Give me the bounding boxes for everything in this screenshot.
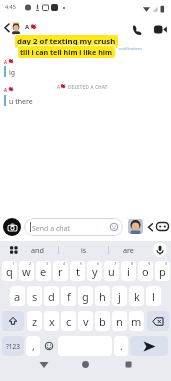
button[interactable]: u (104, 261, 119, 281)
staticText: z (32, 314, 38, 329)
staticText: . (120, 339, 123, 353)
staticText: is (81, 245, 87, 255)
button[interactable]: v (78, 311, 93, 331)
button[interactable] (6, 244, 22, 256)
button[interactable]: x (44, 311, 59, 331)
staticText: s (32, 289, 38, 304)
button[interactable]: is (76, 243, 92, 257)
staticText: k (134, 289, 140, 304)
staticText: , (32, 339, 35, 353)
staticText: o (142, 264, 149, 279)
button[interactable]: h (95, 286, 110, 306)
button[interactable] (2, 22, 12, 34)
button[interactable]: n (112, 311, 127, 331)
button[interactable]: z (27, 311, 42, 331)
button[interactable]: and (22, 243, 52, 257)
staticText: 4:45 (5, 3, 16, 10)
staticText: 2 (29, 261, 32, 266)
staticText: DELETED A CHAT (68, 84, 108, 90)
staticText: g (82, 289, 89, 304)
button[interactable]: b (95, 311, 110, 331)
button[interactable]: y (87, 261, 102, 281)
button[interactable]: g (78, 286, 93, 306)
button[interactable]: , (26, 336, 40, 356)
staticText: i (127, 264, 130, 279)
button[interactable]: w (19, 261, 34, 281)
staticText: p (159, 264, 166, 279)
staticText: and (31, 245, 44, 255)
button[interactable]: j (112, 286, 127, 306)
staticText: day 2 of texting my crush (17, 36, 116, 47)
staticText: c (66, 314, 72, 329)
staticText: 0 (165, 261, 168, 266)
staticText: u there (9, 97, 33, 107)
staticText: A (57, 84, 60, 90)
button[interactable]: e (36, 261, 51, 281)
staticText: notifications (119, 46, 143, 51)
staticText: 9 (148, 261, 151, 266)
button[interactable]: m (129, 311, 144, 331)
button[interactable]: Send a chat (24, 218, 123, 236)
button[interactable] (122, 358, 135, 371)
button[interactable] (2, 311, 24, 331)
button[interactable] (3, 218, 21, 236)
staticText: till i can tell him i like him (20, 47, 113, 57)
staticText: t (76, 264, 80, 279)
staticText: 1 (12, 261, 15, 266)
staticText: w (22, 264, 31, 279)
button[interactable] (153, 243, 167, 257)
button[interactable]: i (121, 261, 136, 281)
button[interactable]: are (118, 243, 138, 257)
button[interactable]: o (138, 261, 153, 281)
button[interactable] (36, 360, 52, 370)
staticText: 4 (63, 261, 66, 266)
staticText: n (116, 314, 123, 329)
staticText: A (4, 87, 8, 93)
button[interactable] (154, 25, 168, 34)
staticText: 3 (46, 261, 49, 266)
staticText: 8 (131, 261, 134, 266)
staticText: v (83, 314, 89, 329)
staticText: d (48, 289, 55, 304)
button[interactable] (146, 222, 155, 233)
staticText: y (92, 264, 98, 279)
staticText: 5 (80, 261, 83, 266)
staticText: r (58, 264, 63, 279)
button[interactable]: ?123 (2, 336, 24, 356)
staticText: u (108, 264, 115, 279)
button[interactable] (42, 336, 56, 356)
button[interactable] (79, 358, 92, 371)
staticText: ?123 (6, 342, 20, 351)
button[interactable] (147, 311, 169, 331)
staticText: b (99, 314, 106, 329)
button[interactable]: k (129, 286, 144, 306)
button[interactable]: a (10, 286, 25, 306)
staticText: are (123, 245, 134, 255)
button[interactable]: r (53, 261, 68, 281)
button[interactable]: . (114, 336, 128, 356)
staticText: h (99, 289, 106, 304)
staticText: 7 (114, 261, 117, 266)
button[interactable]: c (61, 311, 76, 331)
button[interactable] (130, 336, 168, 356)
button[interactable]: t (70, 261, 85, 281)
button[interactable]: l (146, 286, 161, 306)
staticText: m (131, 314, 142, 329)
staticText: A (4, 59, 8, 65)
button[interactable]: d (44, 286, 59, 306)
button[interactable]: p (155, 261, 170, 281)
staticText: q (6, 264, 13, 279)
staticText: j (118, 289, 121, 304)
button[interactable]: q (2, 261, 17, 281)
staticText: a (14, 289, 21, 304)
button[interactable]: f (61, 286, 76, 306)
staticText: l (152, 289, 155, 304)
staticText: 6 (97, 261, 100, 266)
button[interactable] (131, 24, 145, 36)
button[interactable] (156, 220, 169, 233)
staticText: ig (9, 68, 16, 78)
staticText: A (25, 23, 30, 31)
button[interactable]: s (27, 286, 42, 306)
staticText: Send a chat (32, 224, 71, 234)
